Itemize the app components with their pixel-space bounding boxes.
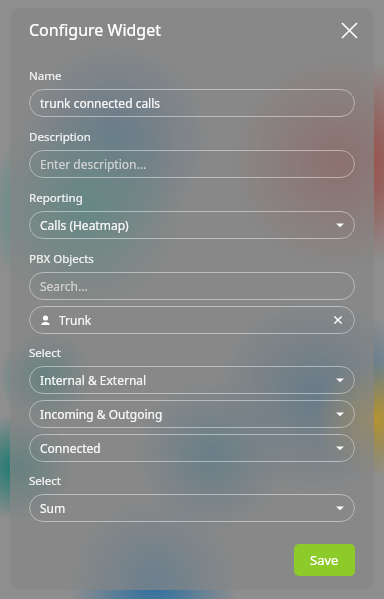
staticText: Connected xyxy=(40,440,336,456)
staticText: Internal & External xyxy=(40,372,336,388)
button[interactable]: Enter description... xyxy=(29,150,355,178)
staticText: Trunk xyxy=(59,312,332,328)
other: Remove Trunk xyxy=(332,314,344,326)
staticText: Incoming & Outgoing xyxy=(40,406,336,422)
button[interactable]: Connected xyxy=(29,434,355,462)
button[interactable]: Trunk xyxy=(29,306,355,334)
staticText: trunk connected calls xyxy=(40,95,344,111)
button[interactable]: Incoming & Outgoing xyxy=(29,400,355,428)
button[interactable]: trunk connected calls xyxy=(29,89,355,117)
staticText: Search... xyxy=(40,278,344,294)
button[interactable]: Internal & External xyxy=(29,366,355,394)
staticText: Configure Widget xyxy=(29,19,334,41)
staticText: Reporting xyxy=(29,190,83,206)
staticText: Description xyxy=(29,129,91,145)
staticText: Calls (Heatmap) xyxy=(40,217,336,233)
button[interactable]: Calls (Heatmap) xyxy=(29,211,355,239)
staticText: Sum xyxy=(40,500,336,516)
staticText: Select xyxy=(29,473,61,489)
staticText: Save xyxy=(310,551,339,569)
button[interactable]: Save xyxy=(294,544,355,576)
staticText: Select xyxy=(29,345,61,361)
button[interactable]: Search... xyxy=(29,272,355,300)
staticText: Enter description... xyxy=(40,156,344,172)
staticText: Name xyxy=(29,68,62,84)
button[interactable]: Sum xyxy=(29,494,355,522)
button[interactable]: Close xyxy=(334,15,364,45)
staticText: PBX Objects xyxy=(29,251,94,267)
